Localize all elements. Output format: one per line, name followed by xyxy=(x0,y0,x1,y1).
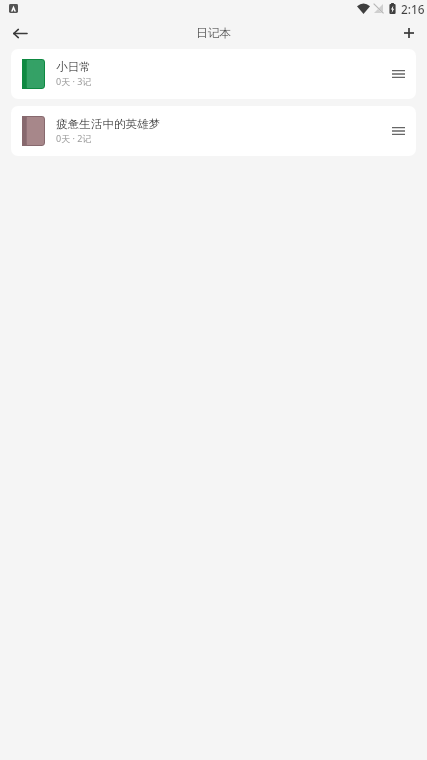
staticText: 日记本 xyxy=(196,26,232,41)
button[interactable]: 疲惫生活中的英雄梦 xyxy=(11,106,416,156)
staticText: 2:16 xyxy=(401,1,425,17)
button[interactable]: Back xyxy=(6,19,34,47)
button[interactable]: 小日常 xyxy=(11,49,416,99)
staticText: 疲惫生活中的英雄梦 xyxy=(56,117,161,132)
button[interactable]: Add xyxy=(395,19,423,47)
button[interactable]: Reorder xyxy=(386,62,410,86)
button[interactable]: Reorder xyxy=(386,119,410,143)
staticText: 小日常 xyxy=(56,60,91,75)
staticText: 0天 · 3记 xyxy=(56,75,92,87)
staticText: 0天 · 2记 xyxy=(56,132,92,144)
